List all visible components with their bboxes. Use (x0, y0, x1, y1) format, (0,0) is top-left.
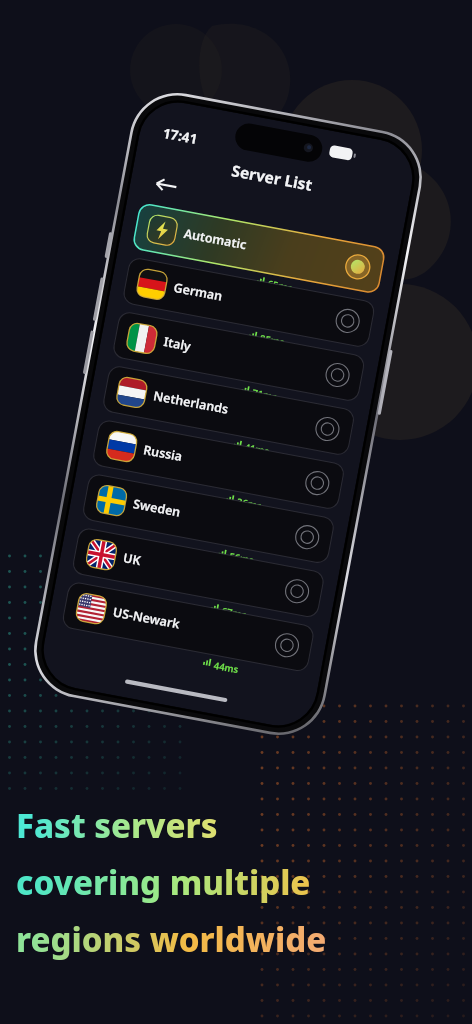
button[interactable]: Server List promotional screen (0, 0, 472, 1024)
